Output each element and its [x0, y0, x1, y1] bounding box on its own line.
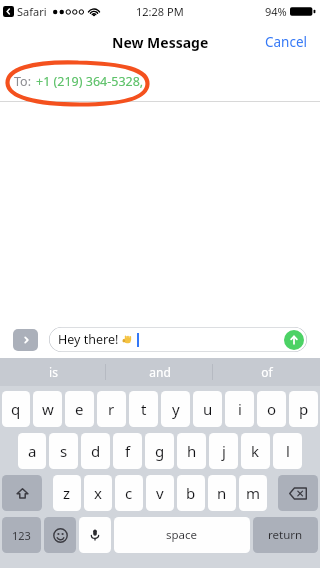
- button[interactable]: d: [81, 433, 110, 469]
- button[interactable]: and: [106, 358, 213, 386]
- button[interactable]: is: [0, 358, 106, 386]
- button[interactable]: q: [2, 391, 30, 427]
- button[interactable]: To:: [0, 62, 320, 101]
- staticText: return: [268, 527, 303, 543]
- button[interactable]: o: [257, 391, 286, 427]
- button[interactable]: x: [84, 475, 112, 511]
- button[interactable]: b: [177, 475, 205, 511]
- staticText: i: [238, 399, 242, 419]
- button[interactable]: k: [241, 433, 270, 469]
- staticText: r: [108, 399, 115, 419]
- button[interactable]: u: [193, 391, 222, 427]
- staticText: u: [203, 399, 213, 419]
- button[interactable]: i: [225, 391, 254, 427]
- staticText: b: [186, 483, 196, 503]
- staticText: m: [246, 483, 261, 503]
- button[interactable]: t: [129, 391, 158, 427]
- staticText: n: [217, 483, 227, 503]
- staticText: x: [94, 483, 102, 503]
- button[interactable]: f: [113, 433, 142, 469]
- button[interactable]: e: [65, 391, 94, 427]
- button[interactable]: w: [33, 391, 62, 427]
- staticText: f: [125, 441, 131, 461]
- button[interactable]: a: [18, 433, 46, 469]
- button[interactable]: h: [177, 433, 206, 469]
- staticText: Safari: [17, 4, 47, 19]
- staticText: l: [286, 441, 290, 461]
- button[interactable]: of: [213, 358, 320, 386]
- staticText: Cancel: [265, 33, 308, 51]
- button[interactable]: y: [161, 391, 190, 427]
- button[interactable]: Cancel: [253, 25, 320, 59]
- button[interactable]: v: [146, 475, 174, 511]
- staticText: a: [28, 441, 37, 461]
- button[interactable]: c: [115, 475, 143, 511]
- staticText: +1 (219) 364-5328,: [36, 73, 144, 90]
- button[interactable]: l: [273, 433, 302, 469]
- button[interactable]: z: [53, 475, 81, 511]
- staticText: 123: [12, 528, 31, 543]
- button[interactable]: Show more options: [13, 329, 38, 351]
- staticText: v: [156, 483, 164, 503]
- button[interactable]: Shift: [2, 475, 42, 511]
- button[interactable]: g: [145, 433, 174, 469]
- staticText: is: [49, 364, 58, 380]
- staticText: Hey there!: [58, 331, 119, 348]
- button[interactable]: m: [239, 475, 267, 511]
- button[interactable]: r: [97, 391, 126, 427]
- staticText: p: [299, 399, 309, 419]
- button[interactable]: Hey there!: [49, 327, 307, 352]
- button[interactable]: Dictation: [79, 517, 111, 553]
- staticText: k: [251, 441, 260, 461]
- staticText: o: [267, 399, 277, 419]
- button[interactable]: p: [289, 391, 318, 427]
- staticText: e: [75, 399, 84, 419]
- button[interactable]: Emoji: [44, 517, 76, 553]
- button[interactable]: Send: [284, 330, 304, 350]
- button[interactable]: s: [49, 433, 78, 469]
- staticText: New Message: [112, 33, 209, 52]
- staticText: q: [11, 399, 21, 419]
- staticText: j: [222, 441, 226, 461]
- staticText: 12:28 PM: [136, 4, 184, 19]
- staticText: w: [42, 399, 54, 419]
- button[interactable]: Backspace: [278, 475, 318, 511]
- staticText: 94%: [265, 4, 287, 19]
- staticText: s: [60, 441, 68, 461]
- staticText: of: [261, 364, 273, 380]
- staticText: z: [63, 483, 71, 503]
- staticText: To:: [14, 73, 31, 90]
- button[interactable]: n: [208, 475, 236, 511]
- staticText: d: [91, 441, 101, 461]
- staticText: g: [155, 441, 165, 461]
- button[interactable]: space: [114, 517, 250, 553]
- staticText: c: [125, 483, 133, 503]
- button[interactable]: j: [209, 433, 238, 469]
- staticText: space: [166, 527, 198, 543]
- staticText: y: [172, 399, 180, 419]
- button[interactable]: 123: [2, 517, 41, 553]
- button[interactable]: return: [253, 517, 318, 553]
- staticText: and: [149, 364, 171, 380]
- staticText: h: [187, 441, 197, 461]
- staticText: t: [141, 399, 147, 419]
